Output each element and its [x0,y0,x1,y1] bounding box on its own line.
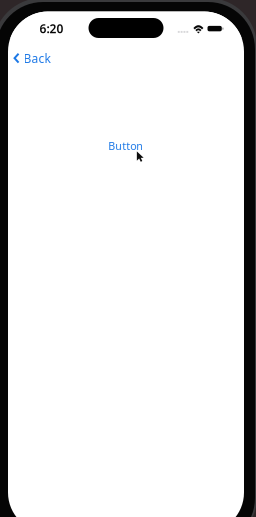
staticText: 6:20 [39,21,63,37]
button[interactable]: Back [8,47,80,69]
button[interactable]: Button [105,137,146,155]
staticText: Back [23,50,50,66]
staticText: Button [108,139,143,153]
